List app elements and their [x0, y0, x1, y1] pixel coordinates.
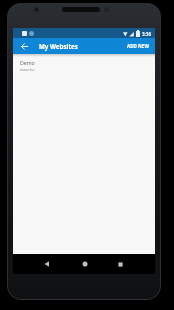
staticText: 3:36 — [142, 31, 151, 37]
button[interactable]: ADD NEW — [127, 43, 149, 49]
button[interactable] — [79, 258, 91, 270]
staticText: Demo — [20, 59, 35, 66]
button[interactable]: Demo — [20, 59, 155, 72]
staticText: My Websites — [39, 42, 78, 50]
button[interactable] — [20, 42, 29, 51]
staticText: www.ho — [20, 67, 35, 72]
staticText: ADD NEW — [127, 43, 149, 49]
button[interactable] — [41, 258, 53, 270]
button[interactable] — [114, 258, 126, 270]
